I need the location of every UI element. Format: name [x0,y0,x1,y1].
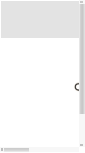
button[interactable]: Logo [74,82,83,91]
button[interactable]: Horizontal scrollbar [0,147,79,152]
button[interactable]: Vertical scrollbar [79,0,85,147]
